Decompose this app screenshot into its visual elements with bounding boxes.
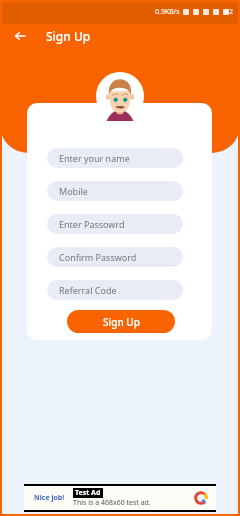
staticText: Test Ad [75, 488, 101, 498]
staticText: Referral Code [59, 284, 117, 296]
staticText: Sign Up [46, 28, 91, 44]
button[interactable]: Enter Passowrd [47, 214, 183, 234]
button[interactable]: Referral Code [47, 280, 183, 300]
staticText: Nice job! [34, 493, 65, 503]
staticText: Sign Up [103, 315, 140, 329]
staticText: This is a 468x60 test ad. [73, 498, 151, 508]
button[interactable]: Nice job! [24, 486, 216, 510]
staticText: Enter Passowrd [59, 218, 125, 230]
staticText: 42 [225, 7, 234, 17]
button[interactable]: Sign Up [67, 310, 175, 333]
staticText: Confirm Password [59, 251, 137, 263]
staticText: Mobile [59, 185, 88, 197]
button[interactable]: Confirm Password [47, 247, 183, 267]
button[interactable]: Back [8, 24, 32, 48]
staticText: Enter your name [59, 152, 130, 164]
staticText: 0.9KB/s [155, 7, 180, 17]
button[interactable]: Enter your name [47, 148, 183, 168]
button[interactable]: Mobile [47, 181, 183, 201]
